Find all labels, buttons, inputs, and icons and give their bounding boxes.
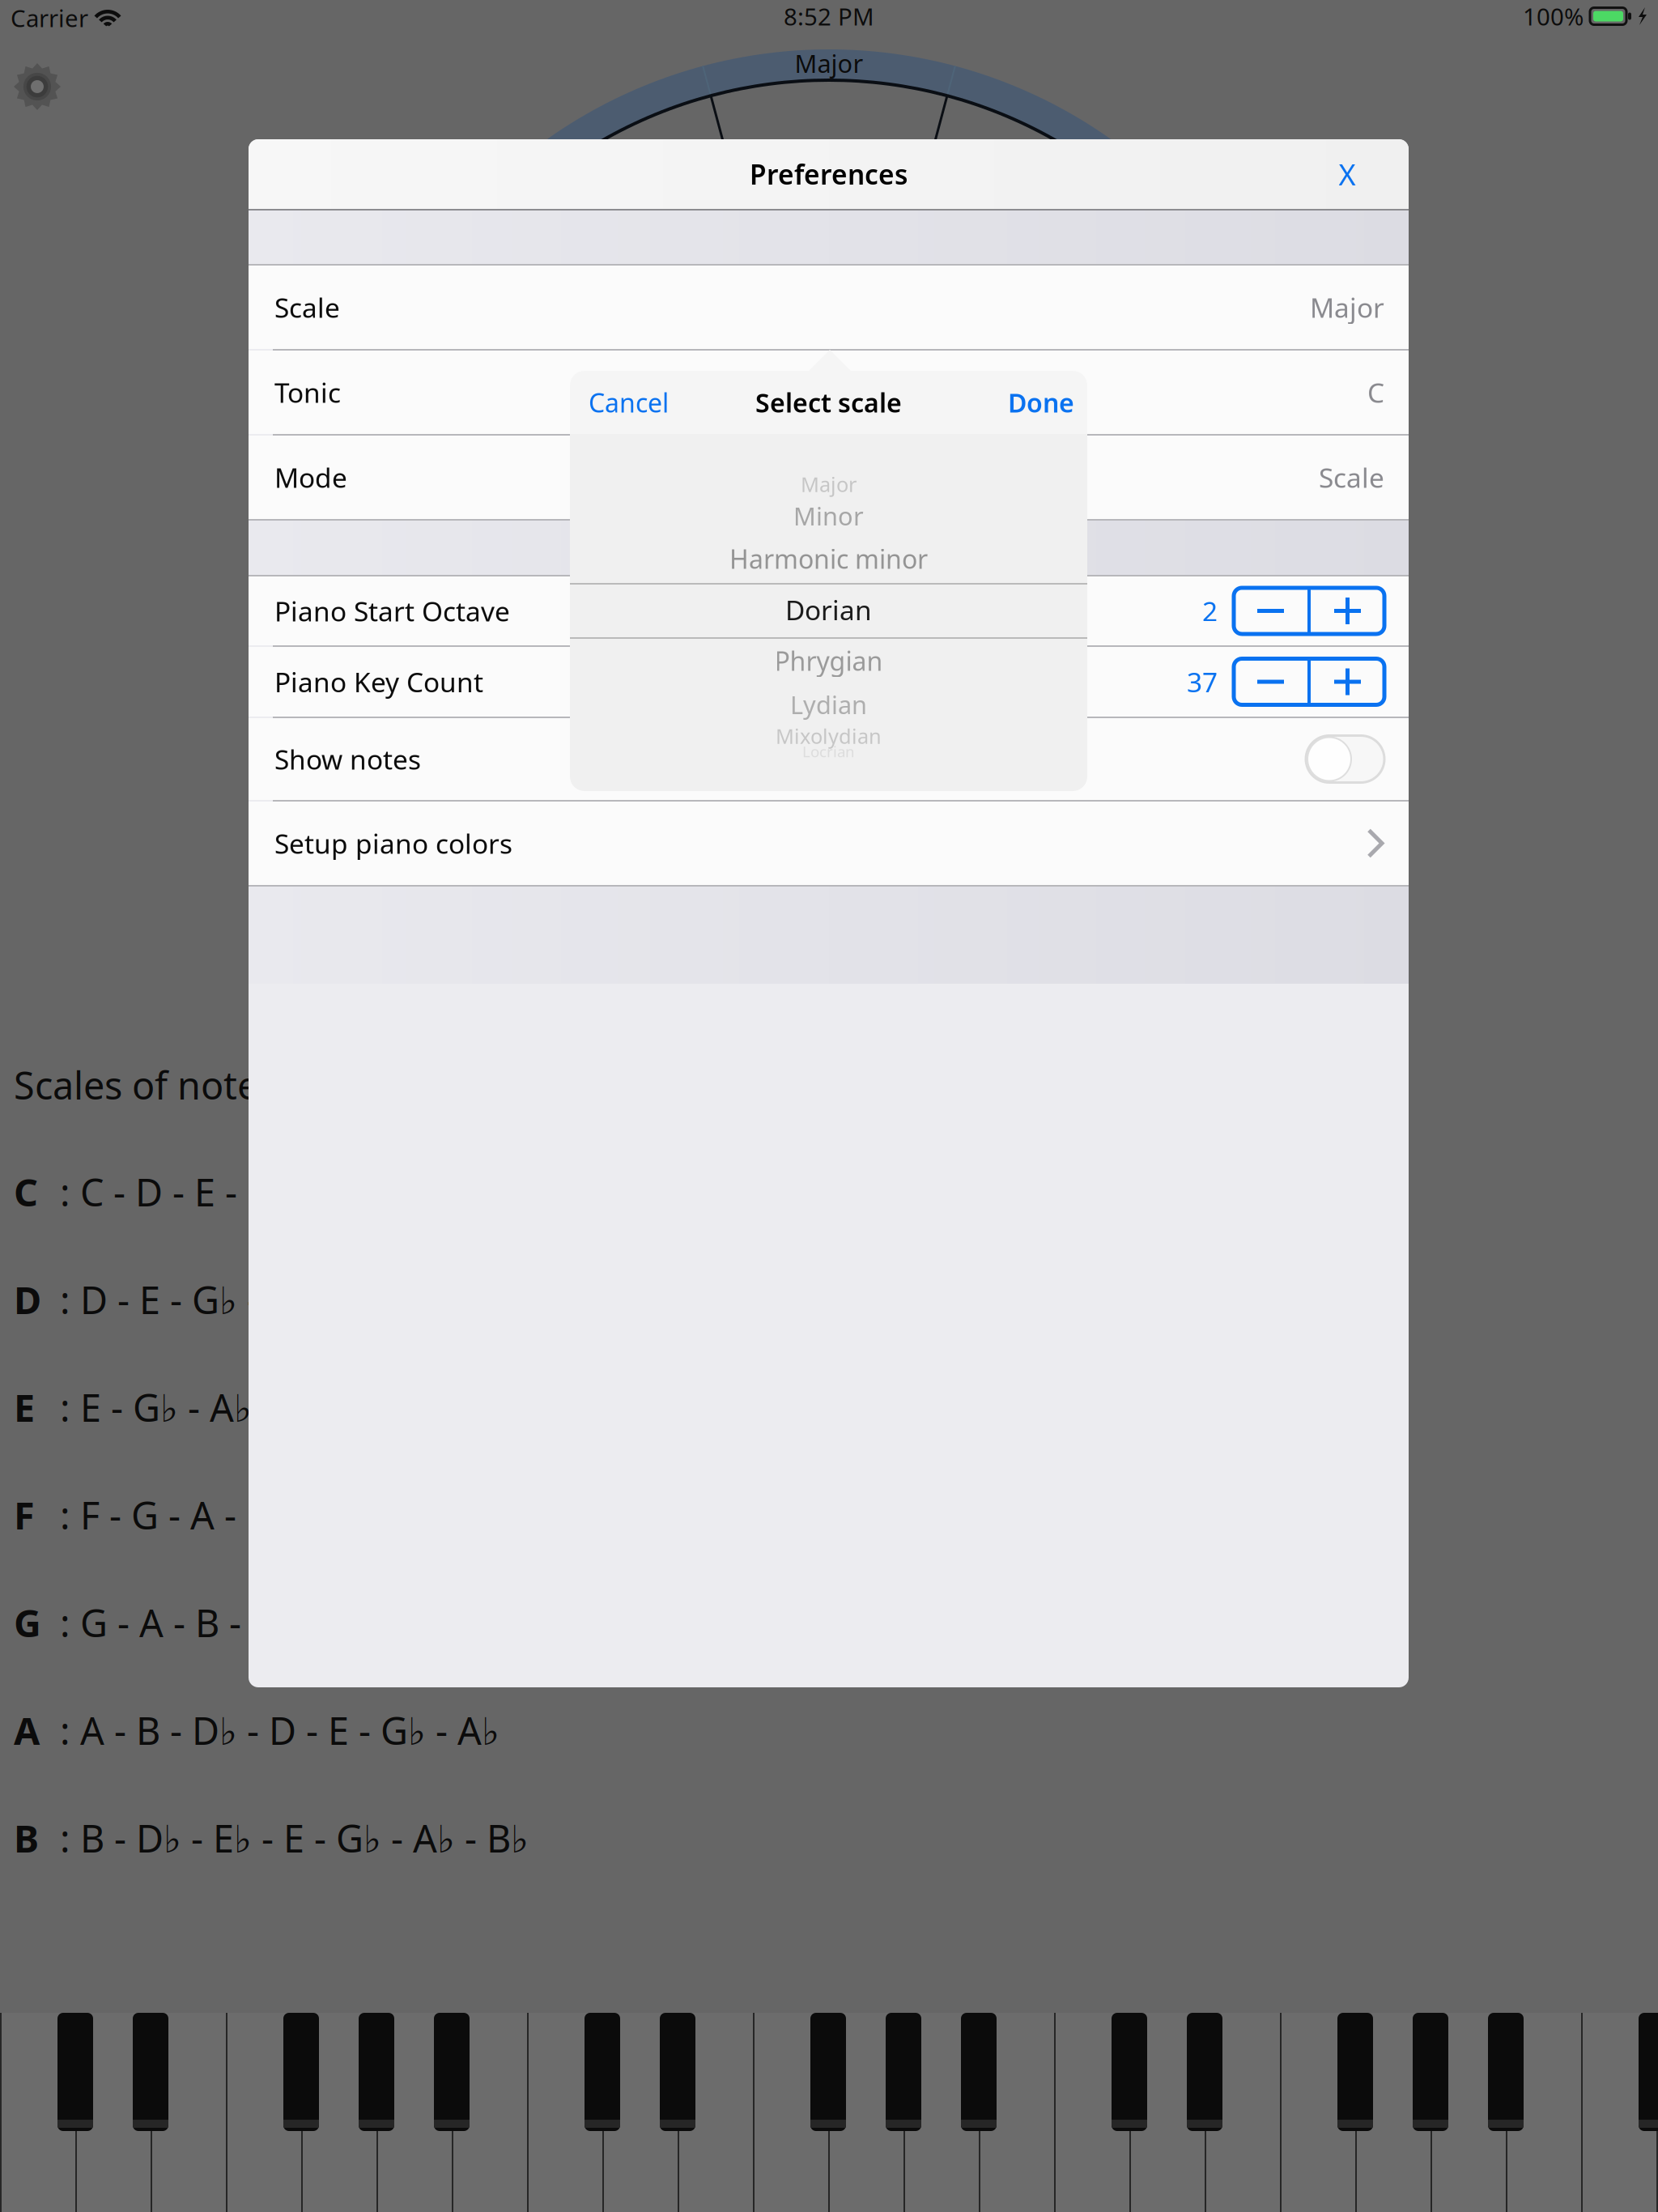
staticText: X — [1339, 155, 1356, 193]
staticText: Major — [795, 47, 863, 80]
staticText: Mode — [274, 459, 347, 495]
button[interactable]: Close — [1315, 139, 1380, 209]
staticText: Select scale — [755, 385, 902, 420]
staticText: C — [1367, 374, 1384, 410]
staticText: Carrier — [11, 2, 88, 34]
button[interactable]: Mode — [249, 436, 1409, 519]
button[interactable]: Scale — [249, 266, 1409, 349]
staticText: F — [14, 1490, 35, 1540]
staticText: Cancel — [589, 385, 669, 420]
staticText: Done — [1008, 385, 1074, 420]
staticText: Major — [801, 471, 857, 498]
staticText: Dorian — [785, 592, 872, 628]
staticText: D — [14, 1274, 41, 1325]
staticText: 100% — [1523, 0, 1584, 32]
button[interactable]: Increase — [1311, 589, 1384, 632]
staticText: 8:52 PM — [784, 0, 874, 32]
button[interactable]: Cancel — [589, 371, 710, 434]
staticText: Setup piano colors — [274, 825, 512, 861]
staticText: C — [14, 1167, 38, 1217]
staticText: : C - D - E - G♭ - A♭ - B♭ — [60, 1167, 440, 1217]
staticText: Piano Key Count — [274, 664, 483, 700]
button[interactable]: Done — [953, 371, 1074, 434]
staticText: 37 — [1187, 664, 1218, 700]
staticText: Mixolydian — [776, 722, 882, 750]
staticText: Show notes — [274, 741, 421, 777]
staticText: : D - E - G♭ - A♭ - A - B — [60, 1274, 423, 1325]
staticText: A — [14, 1705, 40, 1755]
staticText: Scales of notes — [14, 1060, 276, 1110]
button[interactable]: Show notes — [1306, 736, 1384, 783]
staticText: E — [14, 1382, 35, 1432]
staticText: Piano Start Octave — [274, 593, 510, 629]
staticText: : B - D♭ - E♭ - E - G♭ - A♭ - B♭ — [60, 1813, 529, 1863]
staticText: Phrygian — [774, 644, 883, 678]
staticText: 2 — [1202, 593, 1218, 629]
button[interactable]: Tonic — [249, 351, 1409, 434]
staticText: Lydian — [790, 688, 867, 721]
staticText: Harmonic minor — [729, 542, 928, 576]
button[interactable]: Show notes — [249, 718, 1409, 800]
staticText: : A - B - D♭ - D - E - G♭ - A♭ — [60, 1705, 500, 1755]
staticText: Scale — [1319, 459, 1384, 495]
staticText: : F - G - A - B - D♭ - E♭ — [60, 1490, 418, 1540]
button[interactable]: Increase — [1311, 660, 1384, 703]
staticText: Tonic — [274, 374, 341, 410]
staticText: G — [14, 1597, 41, 1648]
staticText: : E - G♭ - A♭ - A - B - D♭ — [60, 1382, 440, 1432]
button[interactable]: Setup piano colors — [249, 802, 1409, 885]
staticText: B — [14, 1813, 39, 1863]
button[interactable]: Decrease — [1234, 660, 1307, 703]
staticText: : G - A - B - D♭ - E♭ - E — [60, 1597, 419, 1648]
staticText: Minor — [793, 499, 864, 532]
button[interactable]: Decrease — [1234, 589, 1307, 632]
staticText: Locrian — [802, 741, 855, 761]
staticText: Scale — [274, 289, 340, 325]
staticText: Preferences — [750, 156, 908, 192]
staticText: Major — [1310, 289, 1384, 325]
button[interactable]: Settings — [3, 53, 71, 121]
